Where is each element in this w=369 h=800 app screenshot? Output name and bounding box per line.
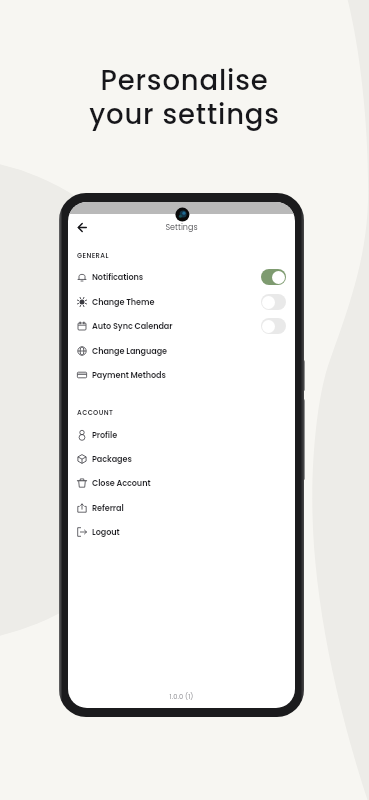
button[interactable]: Change Theme — [261, 294, 286, 310]
button[interactable]: Notifications — [261, 269, 286, 285]
button[interactable]: Change Language — [68, 339, 295, 363]
staticText: Payment Methods — [92, 369, 166, 380]
staticText: GENERAL — [77, 251, 109, 260]
button[interactable]: Change Theme — [68, 290, 295, 314]
button[interactable]: Payment Methods — [68, 363, 295, 387]
staticText: Personalise your settings — [0, 61, 369, 133]
button[interactable]: Notifications — [68, 265, 295, 289]
staticText: Auto Sync Calendar — [92, 320, 173, 331]
staticText: Packages — [92, 453, 132, 464]
staticText: ACCOUNT — [77, 408, 114, 417]
staticText: Referral — [92, 502, 124, 513]
button[interactable]: Auto Sync Calendar — [261, 318, 286, 334]
button[interactable]: Referral — [68, 496, 295, 520]
staticText: Profile — [92, 429, 118, 440]
button[interactable]: Logout — [68, 520, 295, 544]
staticText: 1.0.0 (1) — [68, 692, 295, 701]
button[interactable]: Back — [76, 219, 93, 236]
staticText: Change Language — [92, 345, 167, 356]
button[interactable]: Auto Sync Calendar — [68, 314, 295, 338]
staticText: Close Account — [92, 477, 151, 488]
staticText: Change Theme — [92, 296, 155, 307]
staticText: Logout — [92, 526, 120, 537]
button[interactable]: Profile — [68, 423, 295, 447]
button[interactable]: Close Account — [68, 471, 295, 495]
button[interactable]: Packages — [68, 447, 295, 471]
staticText: Settings — [68, 222, 295, 233]
staticText: Notifications — [92, 271, 144, 282]
